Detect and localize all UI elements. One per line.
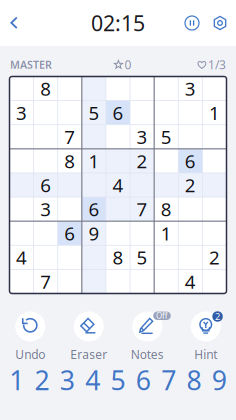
staticText: Off (156, 310, 168, 321)
staticText: 1 (88, 148, 99, 173)
button[interactable]: 9 (207, 365, 232, 395)
staticText: 3 (60, 362, 75, 398)
staticText: 9 (88, 221, 99, 246)
staticText: MASTER (10, 57, 52, 72)
staticText: 1 (161, 221, 172, 246)
staticText: 7 (161, 362, 176, 398)
staticText: 3 (185, 76, 196, 101)
staticText: Hint (194, 346, 217, 362)
staticText: Notes (131, 346, 164, 362)
staticText: 8 (112, 245, 123, 270)
staticText: 7 (137, 197, 148, 221)
button[interactable]: 2 (29, 365, 55, 395)
staticText: 6 (136, 362, 151, 398)
staticText: 6 (185, 148, 196, 173)
staticText: 4 (85, 362, 100, 398)
staticText: 3 (40, 197, 51, 221)
staticText: 7 (40, 269, 51, 294)
staticText: 5 (88, 100, 99, 125)
button[interactable]: Settings (206, 0, 234, 46)
staticText: 8 (64, 148, 75, 173)
staticText: 4 (185, 269, 196, 294)
staticText: Eraser (70, 346, 107, 362)
button[interactable]: 5 (105, 365, 131, 395)
staticText: 2 (215, 310, 220, 323)
staticText: 6 (88, 197, 99, 221)
staticText: 2 (185, 173, 196, 197)
staticText: 6 (40, 173, 51, 197)
staticText: 2 (34, 362, 49, 398)
staticText: 5 (161, 124, 172, 149)
staticText: 3 (16, 100, 27, 125)
staticText: 7 (64, 124, 75, 149)
button[interactable]: Undo (1, 311, 59, 362)
button[interactable]: 2 (176, 311, 235, 362)
staticText: 1 (209, 100, 220, 125)
staticText: 8 (161, 197, 172, 221)
staticText: 5 (110, 362, 125, 398)
staticText: 1 (9, 362, 24, 398)
staticText: 9 (212, 362, 227, 398)
staticText: 6 (112, 100, 123, 125)
button[interactable]: Eraser (59, 311, 118, 362)
button[interactable]: 3 (55, 365, 80, 395)
staticText: 8 (186, 362, 201, 398)
staticText: 2 (209, 245, 220, 270)
staticText: 3 (137, 124, 148, 149)
staticText: 4 (112, 173, 123, 197)
staticText: 0 (124, 57, 131, 72)
button[interactable]: 8 (181, 365, 207, 395)
button[interactable]: Off (118, 311, 176, 362)
staticText: 02:15 (91, 9, 145, 37)
staticText: Undo (15, 346, 45, 362)
button[interactable]: 1 (4, 365, 29, 395)
button[interactable]: Back (0, 0, 28, 46)
button[interactable]: 6 (131, 365, 156, 395)
staticText: 1/3 (208, 57, 226, 72)
staticText: 4 (16, 245, 27, 270)
staticText: 2 (137, 148, 148, 173)
staticText: 6 (64, 221, 75, 246)
button[interactable]: Pause (178, 0, 206, 46)
button[interactable]: 7 (156, 365, 181, 395)
button[interactable]: 4 (80, 365, 105, 395)
staticText: 8 (40, 76, 51, 101)
staticText: 5 (137, 245, 148, 270)
